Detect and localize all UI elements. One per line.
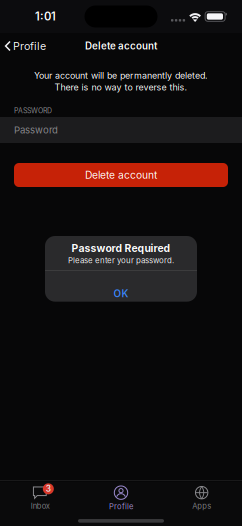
button[interactable]: 3	[0, 481, 81, 511]
staticText: OK	[113, 288, 128, 300]
staticText: Please enter your password.	[68, 256, 174, 265]
button[interactable]: Profile	[81, 481, 161, 511]
button[interactable]: Profile	[0, 35, 50, 56]
staticText: There is no way to reverse this.	[54, 82, 187, 93]
staticText: PASSWORD	[14, 107, 52, 115]
staticText: Delete account	[85, 40, 157, 52]
button[interactable]: OK	[45, 271, 197, 302]
staticText: Your account will be permanently deleted…	[34, 70, 208, 81]
staticText: Profile	[109, 502, 133, 511]
staticText: Password	[14, 124, 58, 136]
button[interactable]: Delete account	[0, 163, 242, 187]
staticText: 3	[46, 484, 51, 494]
staticText: Apps	[192, 501, 211, 511]
staticText: Profile	[13, 39, 46, 52]
button[interactable]: Apps	[161, 481, 242, 511]
staticText: Delete account	[85, 169, 157, 181]
staticText: Password Required	[71, 242, 170, 255]
staticText: Inbox	[31, 501, 50, 511]
staticText: 1:01	[35, 10, 56, 23]
